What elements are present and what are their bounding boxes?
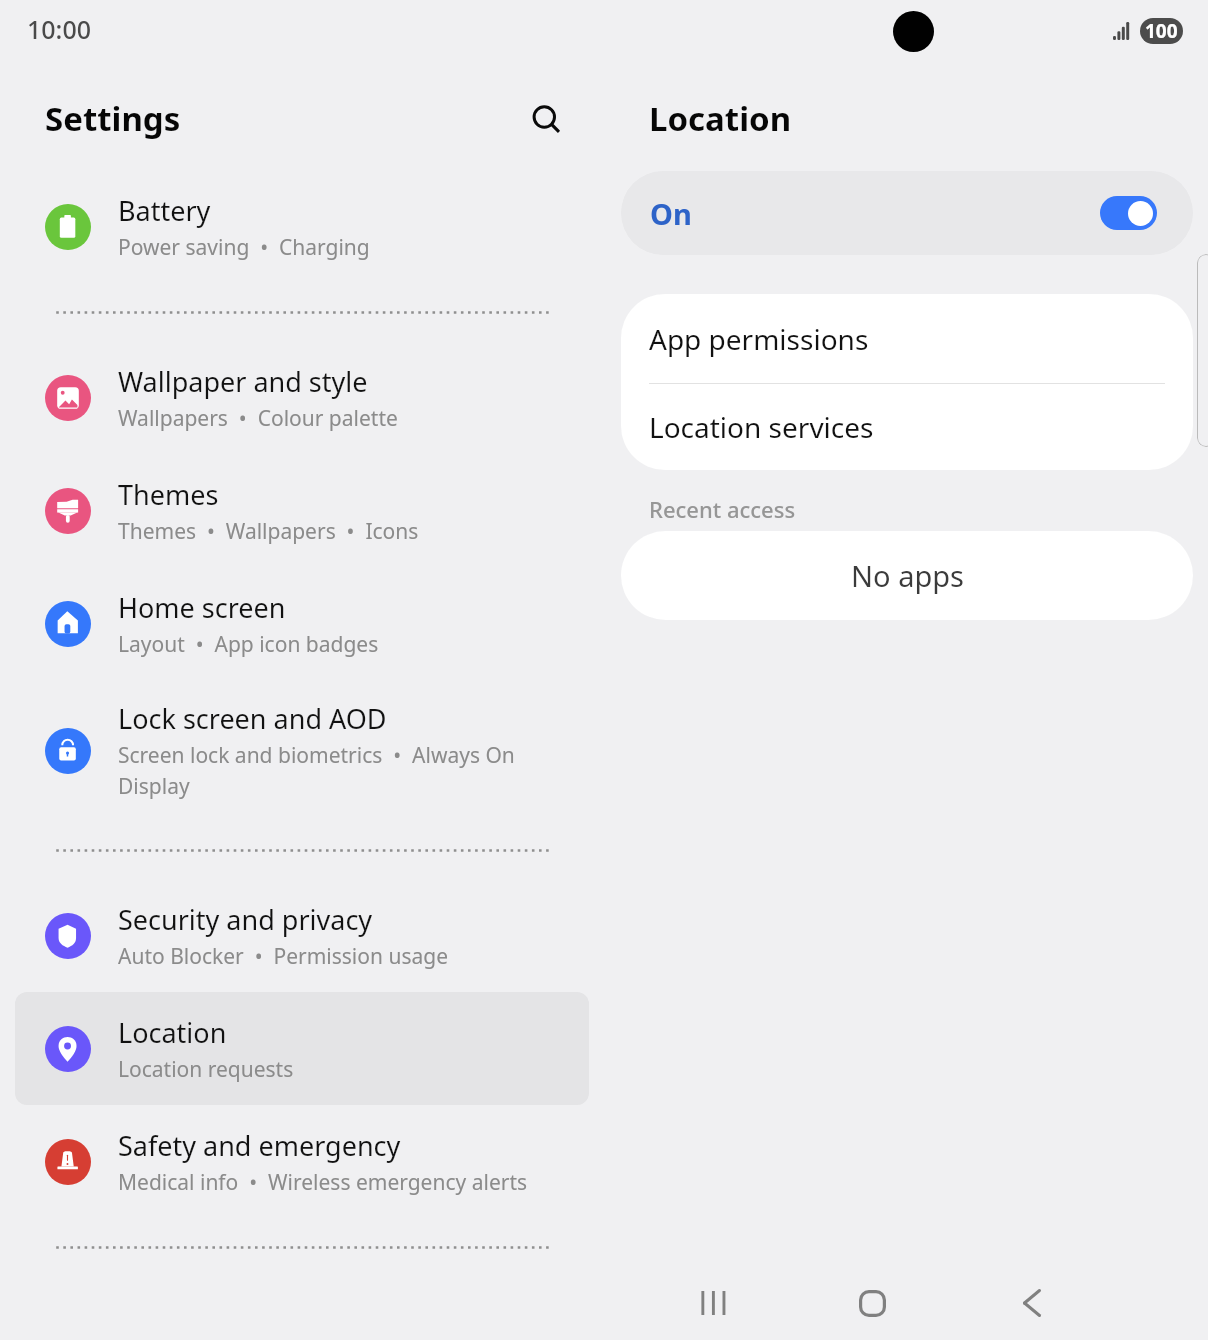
staticText: Security and privacy: [118, 901, 373, 938]
staticText: Safety and emergency: [118, 1127, 401, 1164]
button[interactable]: Recents: [662, 1273, 762, 1333]
staticText: Location: [649, 96, 792, 141]
staticText: 100: [1145, 18, 1178, 44]
button[interactable]: Security and privacy: [15, 879, 589, 992]
staticText: Recent access: [649, 494, 796, 524]
staticText: Display: [118, 772, 190, 801]
button[interactable]: Lock screen and AOD: [15, 680, 589, 821]
button[interactable]: Location: [15, 992, 589, 1105]
button[interactable]: Home: [822, 1273, 922, 1333]
staticText: Wallpaper and style: [118, 363, 368, 400]
staticText: Medical info • Wireless emergency alerts: [118, 1168, 528, 1197]
button[interactable]: Wallpaper and style: [15, 341, 589, 454]
button[interactable]: Back: [982, 1273, 1082, 1333]
staticText: Settings: [45, 96, 181, 141]
staticText: Screen lock and biometrics • Always On: [118, 741, 515, 770]
staticText: Themes • Wallpapers • Icons: [118, 517, 419, 546]
button[interactable]: Location services: [621, 384, 1193, 470]
button[interactable]: Themes: [15, 454, 589, 567]
button[interactable]: Location on: [1100, 196, 1157, 230]
staticText: Location services: [649, 408, 874, 446]
staticText: No apps: [851, 556, 964, 595]
button[interactable]: App permissions: [621, 294, 1193, 383]
staticText: Themes: [118, 476, 219, 513]
staticText: Wallpapers • Colour palette: [118, 404, 398, 433]
staticText: Location: [118, 1014, 227, 1051]
staticText: Lock screen and AOD: [118, 700, 387, 737]
button[interactable]: Search: [530, 103, 564, 137]
staticText: 10:00: [27, 12, 92, 46]
button[interactable]: Safety and emergency: [15, 1105, 589, 1218]
staticText: Battery: [118, 192, 211, 229]
staticText: App permissions: [649, 320, 869, 358]
staticText: Location requests: [118, 1055, 294, 1084]
button[interactable]: On: [621, 171, 1193, 255]
staticText: Auto Blocker • Permission usage: [118, 942, 448, 971]
staticText: Power saving • Charging: [118, 233, 370, 262]
button[interactable]: Home screen: [15, 567, 589, 680]
staticText: Layout • App icon badges: [118, 630, 379, 659]
staticText: On: [650, 194, 692, 233]
staticText: Home screen: [118, 589, 286, 626]
button[interactable]: No apps: [621, 531, 1193, 620]
button[interactable]: Battery: [15, 170, 589, 283]
